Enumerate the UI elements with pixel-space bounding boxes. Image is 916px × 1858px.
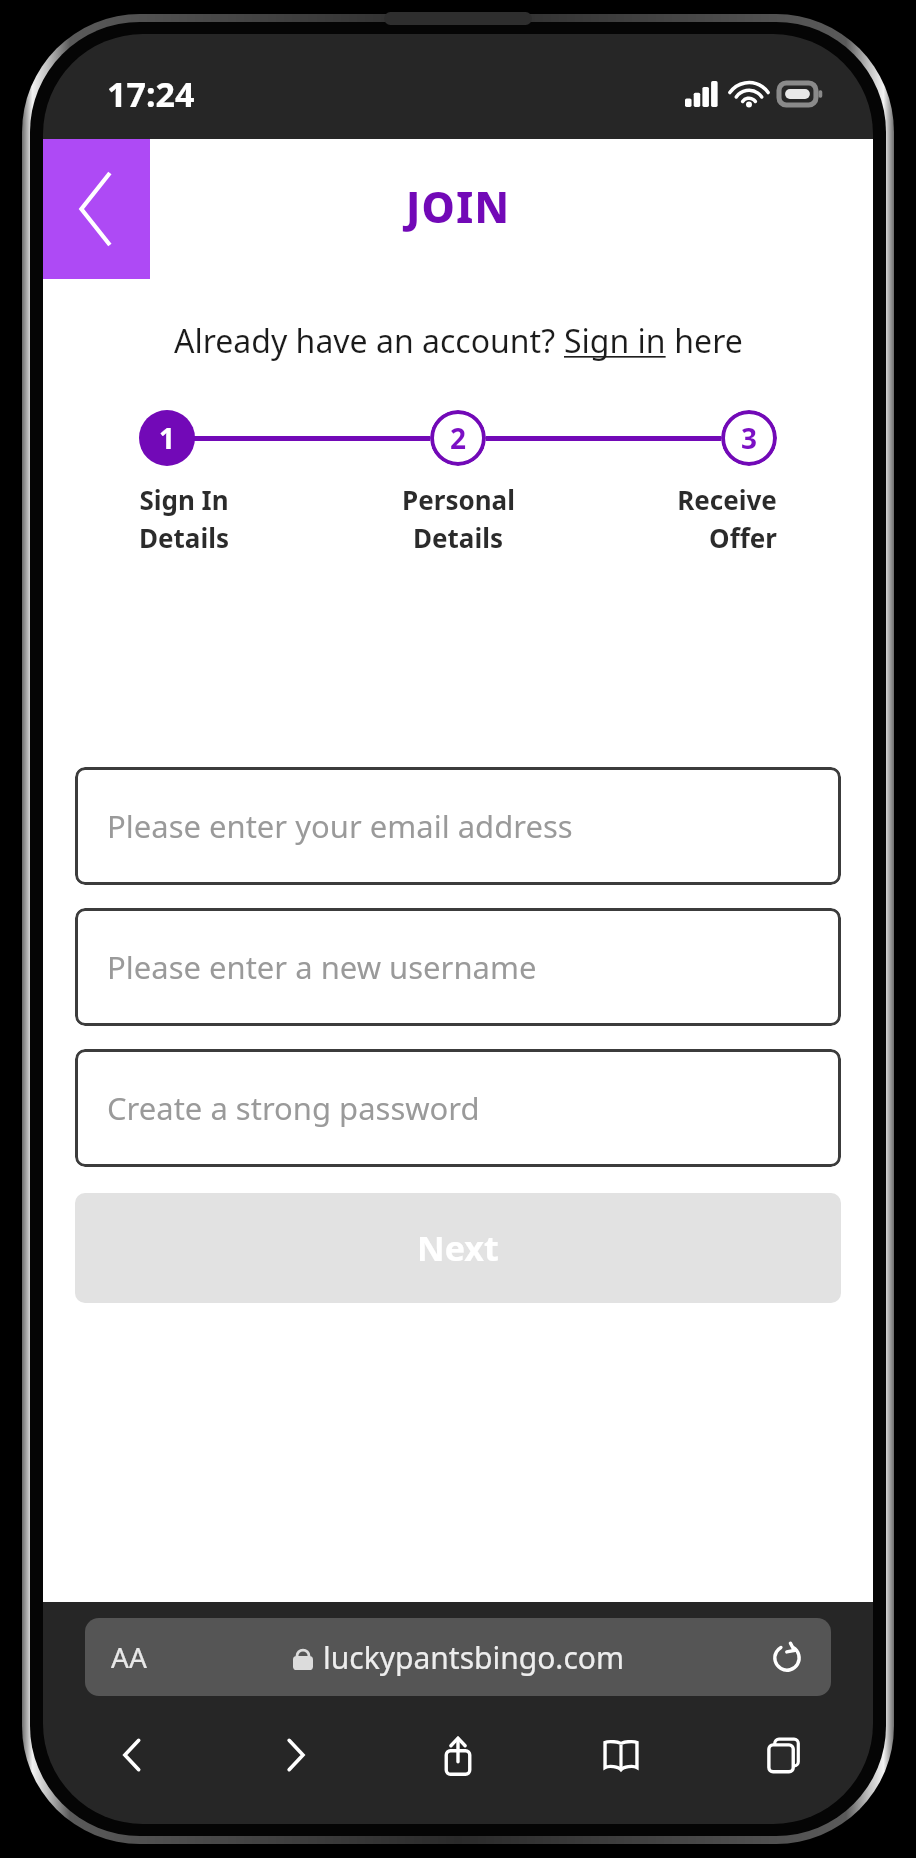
button[interactable]: Bookmarks	[584, 1718, 658, 1792]
staticText: JOIN	[406, 178, 511, 235]
staticText: Already have an account?	[174, 319, 564, 363]
staticText: Personal	[402, 482, 515, 517]
button[interactable]: Sign in	[564, 319, 666, 363]
staticText: Offer	[709, 520, 777, 555]
staticText: Create a strong password	[107, 1087, 480, 1129]
button[interactable]: Create a strong password	[75, 1049, 841, 1167]
button[interactable]: Forward	[258, 1718, 332, 1792]
staticText: 17:24	[107, 71, 195, 117]
staticText: here	[666, 319, 743, 363]
button[interactable]: 1	[139, 410, 195, 466]
staticText: Please enter a new username	[107, 946, 537, 988]
button[interactable]: AA	[111, 1638, 147, 1676]
button[interactable]: Please enter a new username	[75, 908, 841, 1026]
staticText: 1	[159, 419, 176, 457]
button[interactable]: Please enter your email address	[75, 767, 841, 885]
staticText: 2	[450, 419, 467, 457]
staticText: Receive	[677, 482, 777, 517]
staticText: Details	[413, 520, 503, 555]
button[interactable]: 2	[430, 410, 486, 466]
button[interactable]: Text size	[85, 1618, 831, 1696]
button[interactable]: Back	[43, 139, 150, 279]
button[interactable]: 3	[721, 410, 777, 466]
staticText: Next	[417, 1225, 499, 1271]
staticText: 3	[741, 419, 758, 457]
button[interactable]: Next	[75, 1193, 841, 1303]
staticText: Sign In	[139, 482, 229, 517]
button[interactable]: Back	[95, 1718, 169, 1792]
staticText: Details	[139, 520, 229, 555]
staticText: luckypantsbingo.com	[323, 1637, 624, 1678]
button[interactable]: Tabs	[747, 1718, 821, 1792]
staticText: Please enter your email address	[107, 805, 573, 847]
button[interactable]: Share	[421, 1718, 495, 1792]
button[interactable]: Reload	[765, 1635, 809, 1679]
